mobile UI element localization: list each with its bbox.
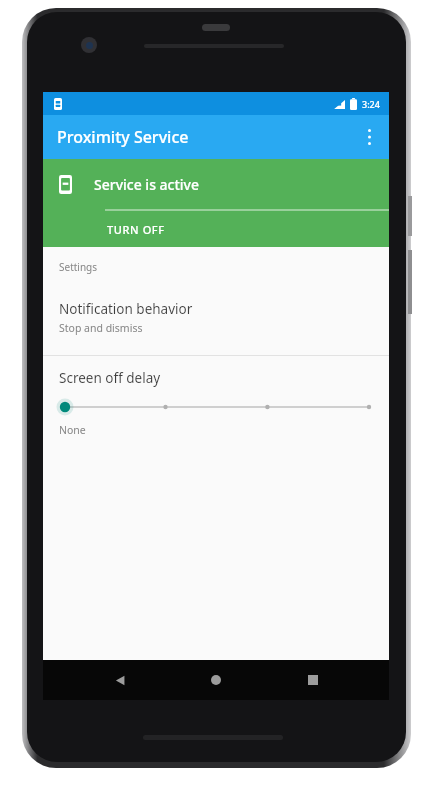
button[interactable]: Notification behavior [43, 300, 389, 347]
staticText: 3:24 [362, 98, 380, 110]
staticText: Notification behavior [59, 300, 193, 318]
staticText: Screen off delay [59, 369, 161, 387]
button[interactable]: More options [349, 117, 389, 157]
staticText: None [59, 423, 86, 437]
button[interactable]: Recent apps [293, 660, 333, 700]
button[interactable]: Screen off delay [43, 369, 389, 437]
button[interactable]: Home [196, 660, 236, 700]
staticText: Stop and dismiss [59, 321, 143, 335]
button[interactable]: TURN OFF [99, 216, 173, 243]
staticText: Proximity Service [57, 126, 189, 148]
button[interactable]: Screen off delay slider [59, 399, 373, 415]
staticText: TURN OFF [107, 222, 165, 237]
staticText: Service is active [94, 175, 200, 194]
staticText: Settings [59, 260, 98, 274]
button[interactable]: Back [100, 660, 140, 700]
